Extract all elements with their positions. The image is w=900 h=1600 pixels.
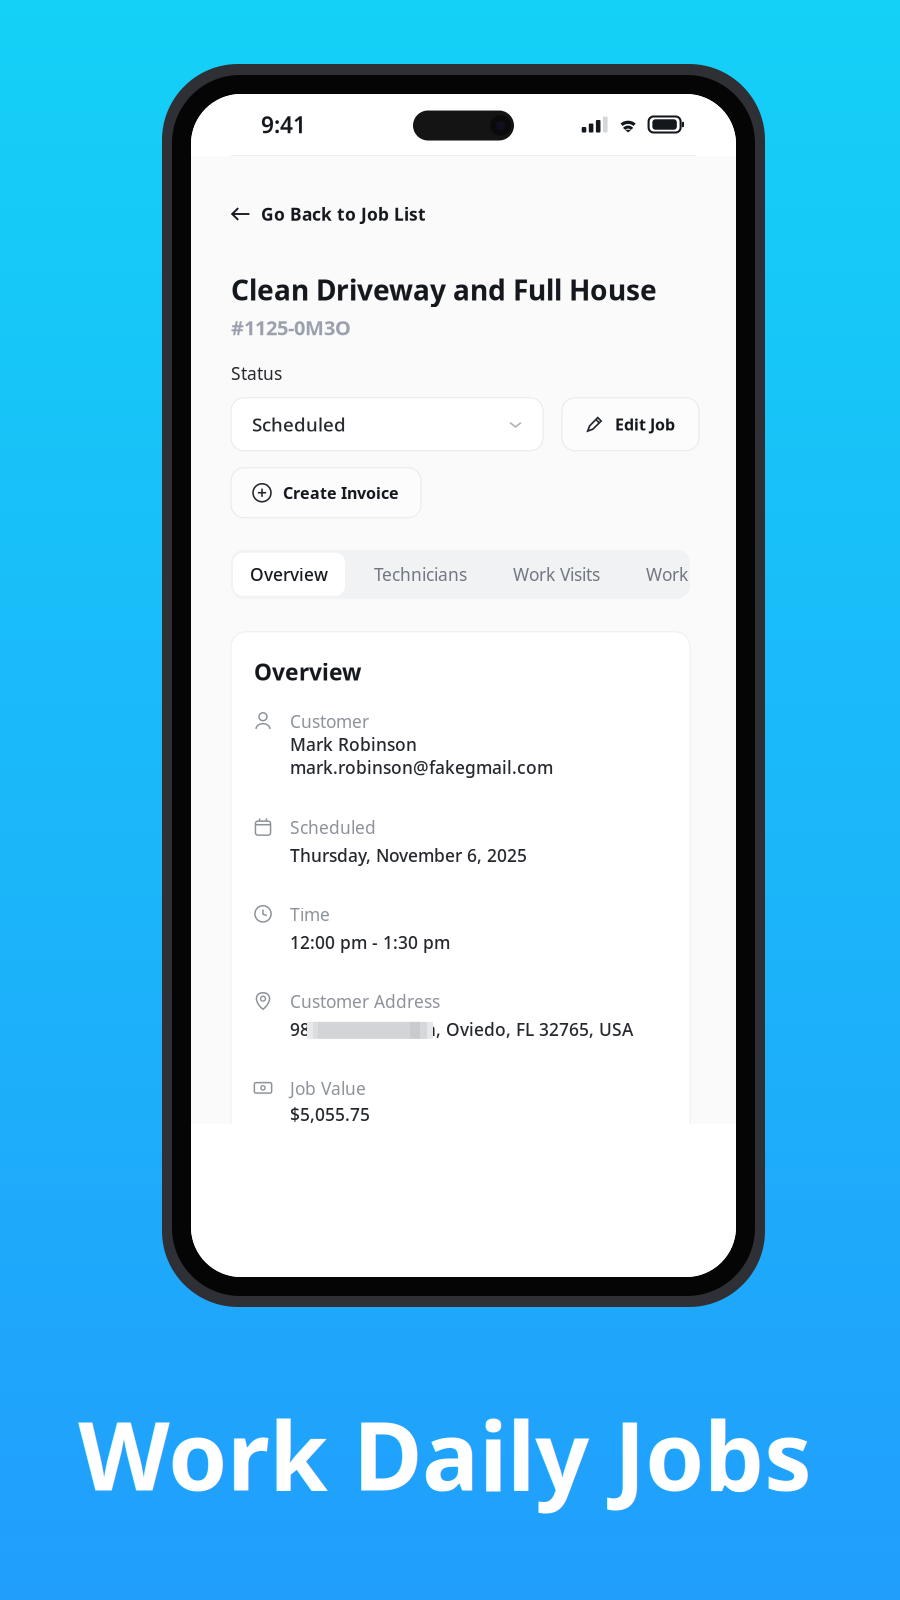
button[interactable]: Scheduled xyxy=(231,398,543,451)
staticText: Create Invoice xyxy=(283,482,399,503)
staticText: Thursday, November 6, 2025 xyxy=(290,844,527,867)
button[interactable]: Overview xyxy=(233,553,345,596)
button[interactable]: Work Visits xyxy=(490,553,623,596)
staticText: Scheduled xyxy=(252,412,346,437)
staticText: 9:41 xyxy=(261,109,306,139)
staticText: 98 n, Oviedo, FL 32765, USA xyxy=(290,1018,633,1041)
button[interactable]: Work Details xyxy=(623,553,771,596)
staticText: Customer xyxy=(290,710,369,733)
button[interactable]: Technicians xyxy=(351,553,490,596)
button[interactable]: Go Back to Job List xyxy=(231,202,426,226)
staticText: mark.robinson@fakegmail.com xyxy=(290,756,553,779)
staticText: Work Details xyxy=(646,563,748,586)
staticText: Job Value xyxy=(290,1077,366,1100)
staticText: Mark Robinson xyxy=(290,733,417,756)
staticText: $5,055.75 xyxy=(290,1103,370,1126)
button[interactable]: Create Invoice xyxy=(231,468,421,518)
staticText: Scheduled xyxy=(290,816,376,839)
staticText: Edit Job xyxy=(615,414,675,435)
staticText: Time xyxy=(290,903,330,926)
button[interactable]: Edit Job xyxy=(562,398,699,451)
staticText: Overview xyxy=(250,563,328,586)
staticText: Overview xyxy=(254,657,361,687)
staticText: Status xyxy=(231,362,282,385)
staticText: Clean Driveway and Full House xyxy=(231,271,657,308)
staticText: #1125-0M3O xyxy=(231,314,351,341)
staticText: Work Visits xyxy=(513,563,600,586)
staticText: Work Daily Jobs xyxy=(78,1391,812,1517)
staticText: Technicians xyxy=(374,563,467,586)
staticText: Customer Address xyxy=(290,990,440,1013)
staticText: 12:00 pm - 1:30 pm xyxy=(290,931,450,954)
staticText: Go Back to Job List xyxy=(261,202,426,225)
